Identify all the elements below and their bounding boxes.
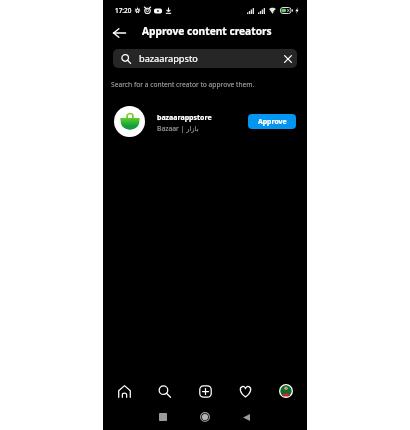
staticText: Approve: [258, 117, 287, 126]
staticText: bazaarappsto: [139, 52, 198, 65]
button[interactable]: Home: [114, 381, 134, 401]
button[interactable]: Create: [195, 381, 215, 401]
staticText: bazaarappstore: [157, 113, 212, 123]
button[interactable]: Profile: [276, 381, 296, 401]
button[interactable]: Home: [196, 408, 214, 426]
staticText: 17:20: [115, 6, 132, 15]
button[interactable]: Recent apps: [154, 408, 172, 426]
staticText: Approve content creators: [142, 24, 272, 38]
button[interactable]: Search: [154, 381, 174, 401]
staticText: Bazaar | بازار: [157, 124, 199, 133]
button[interactable]: bazaarappstore: [103, 106, 307, 137]
button[interactable]: Back: [237, 408, 255, 426]
button[interactable]: bazaarappsto: [113, 49, 297, 68]
staticText: Search for a content creator to approve …: [111, 80, 255, 89]
button[interactable]: Approve: [248, 114, 296, 129]
button[interactable]: Back: [110, 23, 129, 42]
button[interactable]: Activity: [235, 381, 255, 401]
